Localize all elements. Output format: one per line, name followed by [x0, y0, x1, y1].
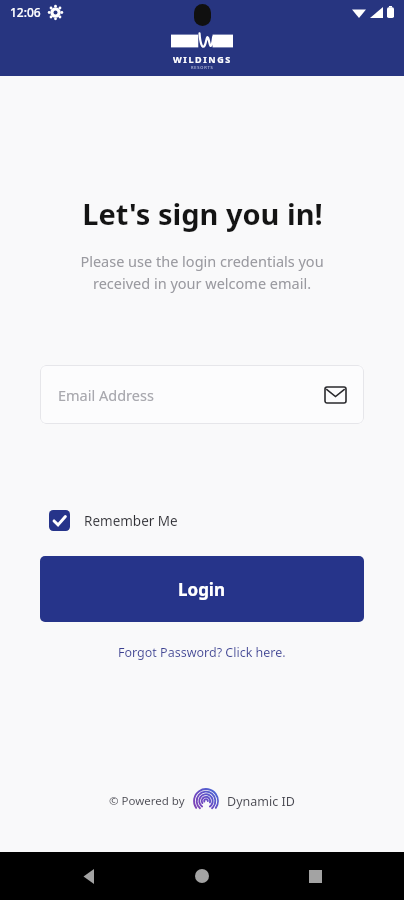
staticText: © Powered by — [109, 793, 185, 809]
staticText: RESORTS — [191, 65, 214, 70]
other: Remember Me checkbox — [49, 510, 70, 531]
staticText: Dynamic ID — [227, 793, 295, 810]
button[interactable]: Forgot Password? Click here. — [114, 640, 290, 665]
button[interactable]: Remember Me checkbox — [40, 510, 364, 531]
staticText: Forgot Password? Click here. — [118, 644, 286, 661]
button[interactable]: Recent apps — [291, 852, 339, 900]
button[interactable]: Email Address — [40, 365, 364, 424]
staticText: Login — [178, 578, 226, 601]
staticText: Please use the login credentials you rec… — [80, 251, 324, 293]
staticText: 12:06 — [10, 4, 41, 20]
staticText: Email Address — [58, 385, 154, 405]
staticText: Remember Me — [84, 512, 178, 530]
button[interactable]: Back — [65, 852, 113, 900]
other: Email — [325, 387, 346, 403]
staticText: WILDINGS — [173, 53, 232, 65]
button[interactable]: Home — [178, 852, 226, 900]
staticText: Let's sign you in! — [82, 194, 323, 233]
button[interactable]: Login — [40, 556, 364, 622]
